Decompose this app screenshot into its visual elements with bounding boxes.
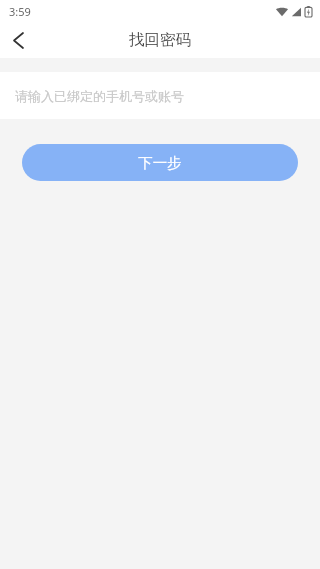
staticText: 找回密码 bbox=[129, 30, 191, 50]
button[interactable]: 请输入已绑定的手机号或账号 bbox=[0, 72, 320, 119]
button[interactable]: 下一步 bbox=[22, 144, 298, 181]
staticText: 请输入已绑定的手机号或账号 bbox=[15, 88, 184, 104]
button[interactable]: Back bbox=[0, 22, 36, 58]
staticText: 下一步 bbox=[138, 154, 182, 172]
staticText: 3:59 bbox=[9, 4, 31, 19]
